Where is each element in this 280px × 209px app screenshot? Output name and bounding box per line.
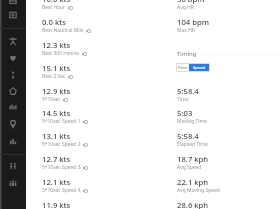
button[interactable]: Groups <box>0 158 26 174</box>
staticText: 104 bpm <box>177 17 210 27</box>
staticText: 12.3 kts <box>42 40 71 50</box>
button[interactable]: Activity <box>0 33 26 49</box>
button[interactable]: 104 bpm <box>177 17 210 34</box>
staticText: 13.1 kts <box>42 131 71 141</box>
staticText: 15.1 kts <box>42 63 71 73</box>
staticText: 18.7 kph <box>177 154 209 164</box>
staticText: 12.9 kts <box>42 86 71 96</box>
staticText: 10.0 kts <box>42 0 71 4</box>
staticText: 28.6 kph <box>177 200 209 209</box>
staticText: 14.5 kts <box>42 108 71 118</box>
staticText: 5:58.4 <box>177 86 199 96</box>
button[interactable]: 5:58.4 <box>177 86 199 103</box>
button[interactable]: 28.6 kph <box>177 200 209 209</box>
button[interactable]: Speed <box>189 64 209 71</box>
button[interactable]: 12.3 kts <box>42 40 87 57</box>
staticText: 22.1 kph <box>177 177 209 187</box>
button[interactable]: Charts <box>0 133 26 149</box>
staticText: 11.9 kts <box>42 200 71 209</box>
staticText: 12.7 kts <box>42 154 71 164</box>
staticText: Speed <box>193 65 206 71</box>
button[interactable]: Location <box>0 116 26 132</box>
staticText: Moving Time <box>177 118 207 125</box>
button[interactable]: 18.7 kph <box>177 154 209 171</box>
button[interactable]: Pace <box>177 64 189 71</box>
button[interactable]: Photos <box>0 7 26 23</box>
button[interactable]: 90 bpm <box>177 0 205 11</box>
staticText: Elapsed Time <box>177 141 208 148</box>
staticText: 5*10sec Speed 1 <box>42 118 81 125</box>
button[interactable]: Heart rate <box>0 50 26 66</box>
staticText: 0.0 kts <box>42 17 66 27</box>
button[interactable]: 22.1 kph <box>177 177 220 194</box>
staticText: Time <box>177 96 189 103</box>
button[interactable]: Intervals <box>0 99 26 115</box>
staticText: Timing <box>177 50 197 58</box>
staticText: 5*10sec Speed 3 <box>42 164 81 171</box>
button[interactable]: Cadence <box>0 67 26 83</box>
staticText: Avg Speed <box>177 164 202 171</box>
button[interactable]: Power <box>0 83 26 99</box>
staticText: Pace <box>178 65 188 71</box>
button[interactable]: 14.5 kts <box>42 108 88 125</box>
button[interactable]: 12.9 kts <box>42 86 71 103</box>
staticText: Avg Moving Speed <box>177 187 220 194</box>
staticText: 12.1 kts <box>42 177 71 187</box>
button[interactable]: Clubs <box>0 175 26 191</box>
staticText: 5*10sec Speed 4 <box>42 187 81 194</box>
button[interactable]: 10.0 kts <box>42 0 73 11</box>
staticText: Best Hour <box>42 4 66 11</box>
staticText: Best Nautical Mile <box>42 27 84 34</box>
button[interactable]: 12.1 kts <box>42 177 88 194</box>
staticText: Avg HR <box>177 4 194 11</box>
staticText: 90 bpm <box>177 0 205 4</box>
button[interactable]: 5:03 <box>177 108 207 125</box>
button[interactable]: 12.7 kts <box>42 154 88 171</box>
button[interactable]: 15.1 kts <box>42 63 73 80</box>
staticText: Max HR <box>177 27 195 34</box>
button[interactable]: 0.0 kts <box>42 17 91 34</box>
staticText: 5*10sec <box>42 96 61 103</box>
staticText: 5:03 <box>177 108 193 118</box>
staticText: 5:58.4 <box>177 131 199 141</box>
staticText: Best 500 metres <box>42 50 80 57</box>
button[interactable]: 5:58.4 <box>177 131 208 148</box>
button[interactable]: 13.1 kts <box>42 131 88 148</box>
staticText: 5*10sec Speed 2 <box>42 141 81 148</box>
button[interactable]: 11.9 kts <box>42 200 88 209</box>
button[interactable]: Calendar <box>0 0 26 9</box>
staticText: Best 2 Sec <box>42 73 66 80</box>
